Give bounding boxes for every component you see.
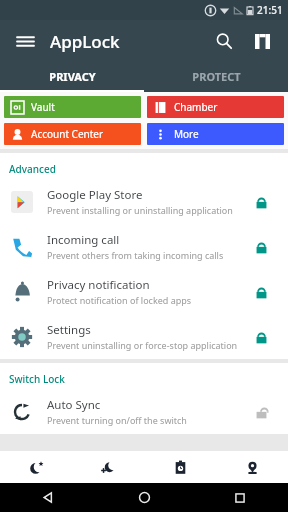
staticText: Advanced <box>9 162 56 176</box>
button[interactable]: Auto Sync <box>0 389 288 434</box>
button[interactable]: Vault <box>4 96 141 118</box>
button[interactable]: Night mode <box>0 451 72 483</box>
button[interactable]: Incoming call <box>0 224 288 269</box>
button[interactable]: Themes <box>246 25 278 57</box>
button[interactable]: Privacy notification <box>0 269 288 314</box>
staticText: Auto Sync <box>47 397 101 413</box>
staticText: Protect notification of locked apps <box>47 294 192 306</box>
button[interactable]: PRIVACY <box>0 62 144 90</box>
staticText: Prevent others from taking incoming call… <box>47 249 224 261</box>
staticText: PROTECT <box>192 69 241 84</box>
staticText: Switch Lock <box>9 372 65 386</box>
staticText: Prevent turning on/off the switch <box>47 414 187 426</box>
button[interactable]: Home <box>96 483 192 512</box>
button[interactable]: Chamber <box>147 96 284 118</box>
button[interactable]: PROTECT <box>144 62 288 90</box>
staticText: Prevent installing or uninstalling appli… <box>47 204 233 216</box>
button[interactable]: Back <box>0 483 96 512</box>
button[interactable]: Location <box>216 451 288 483</box>
button[interactable]: Locked <box>248 279 274 305</box>
button[interactable]: Recents <box>192 483 288 512</box>
button[interactable]: Add night mode <box>72 451 144 483</box>
staticText: Vault <box>31 100 55 114</box>
staticText: Settings <box>47 322 91 338</box>
button[interactable]: Account Center <box>4 123 141 145</box>
staticText: Incoming call <box>47 232 120 248</box>
staticText: Prevent uninstalling or force-stop appli… <box>47 339 238 351</box>
button[interactable]: Search <box>208 25 240 57</box>
button[interactable]: Settings <box>0 314 288 359</box>
staticText: More <box>174 127 199 141</box>
button[interactable]: Google Play Store <box>0 179 288 224</box>
staticText: AppLock <box>50 30 120 53</box>
staticText: Privacy notification <box>47 277 150 293</box>
button[interactable]: Locked <box>248 234 274 260</box>
staticText: PRIVACY <box>49 69 96 84</box>
button[interactable]: More <box>147 123 284 145</box>
staticText: 21:51 <box>257 3 283 17</box>
button[interactable]: Locked <box>248 324 274 350</box>
button[interactable]: Locked <box>248 189 274 215</box>
button[interactable]: Schedule <box>144 451 216 483</box>
button[interactable]: Menu <box>10 26 40 56</box>
staticText: Account Center <box>31 127 104 141</box>
staticText: Chamber <box>174 100 218 114</box>
staticText: Google Play Store <box>47 187 143 203</box>
button[interactable]: Unlocked <box>248 399 274 425</box>
